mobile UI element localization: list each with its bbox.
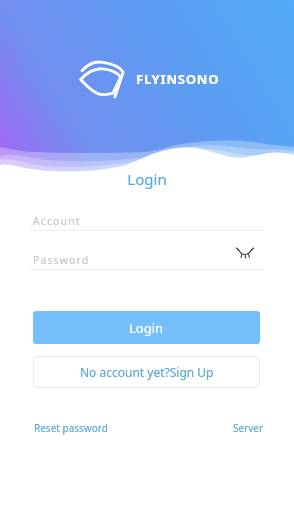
staticText: Reset password xyxy=(34,421,108,435)
staticText: Account xyxy=(33,214,81,228)
staticText: Server xyxy=(233,421,264,435)
button[interactable]: Server xyxy=(226,416,257,430)
staticText: Login xyxy=(129,319,164,337)
button[interactable]: Account xyxy=(30,208,263,230)
button[interactable]: No account yet?Sign Up xyxy=(33,356,260,388)
button[interactable]: Password xyxy=(30,247,263,269)
staticText: Password xyxy=(33,253,90,267)
staticText: No account yet?Sign Up xyxy=(80,364,214,380)
staticText: Login xyxy=(0,169,294,189)
button[interactable]: Login xyxy=(33,311,260,344)
staticText: FLYINSONO xyxy=(136,70,220,88)
button[interactable]: Show password xyxy=(232,242,258,262)
button[interactable]: Reset password xyxy=(27,416,101,430)
